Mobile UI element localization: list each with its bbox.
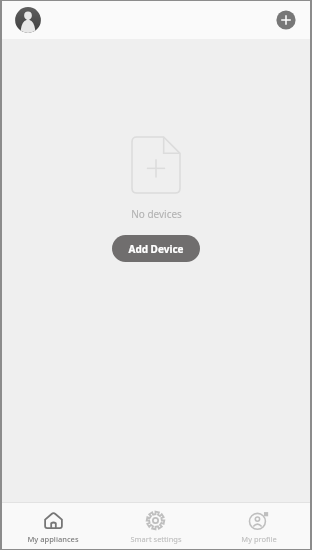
button[interactable]: Add Device [112, 235, 200, 262]
staticText: No devices [131, 207, 182, 221]
button[interactable]: My profile [207, 506, 310, 547]
button[interactable]: Smart settings [104, 506, 207, 547]
staticText: My profile [241, 534, 277, 544]
staticText: My appliances [27, 534, 79, 544]
button[interactable]: Profile [14, 6, 42, 34]
staticText: Add Device [128, 242, 184, 256]
button[interactable]: Add [274, 8, 298, 32]
button[interactable]: My appliances [2, 506, 104, 547]
staticText: Smart settings [130, 534, 182, 544]
